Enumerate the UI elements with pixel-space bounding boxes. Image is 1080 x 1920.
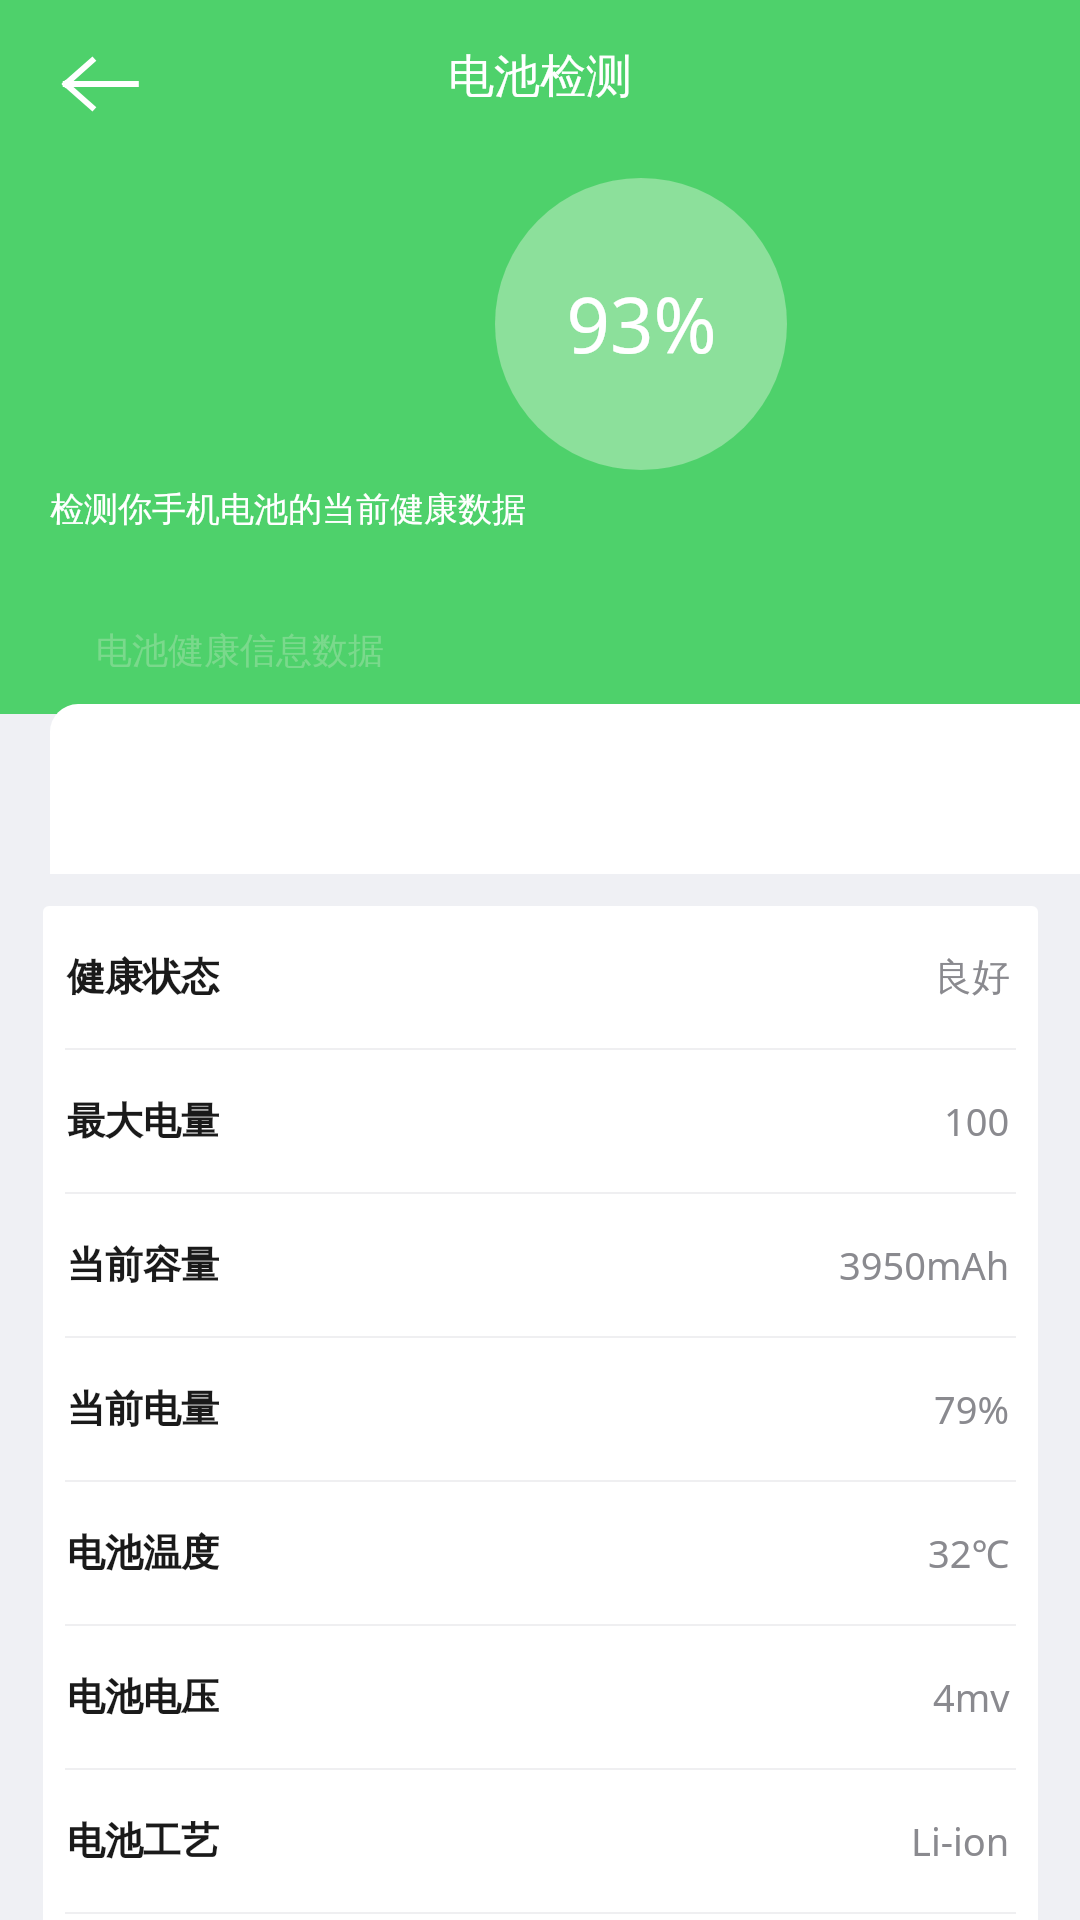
- button[interactable]: 当前容量: [43, 1194, 1038, 1336]
- staticText: 93%: [566, 272, 717, 376]
- staticText: 电池电压: [67, 1673, 219, 1721]
- staticText: 健康状态: [67, 953, 219, 1001]
- staticText: 电池工艺: [67, 1817, 219, 1865]
- staticText: 最大电量: [67, 1097, 219, 1145]
- staticText: 79%: [934, 1383, 1010, 1435]
- staticText: 电池健康信息数据: [96, 628, 384, 673]
- staticText: 4mv: [933, 1671, 1010, 1723]
- staticText: 100: [944, 1095, 1010, 1147]
- button[interactable]: 电池温度: [43, 1482, 1038, 1624]
- staticText: 良好: [934, 953, 1010, 1001]
- button[interactable]: 最大电量: [43, 1050, 1038, 1192]
- staticText: 电池检测: [0, 48, 1080, 106]
- button[interactable]: Back: [44, 28, 156, 140]
- button[interactable]: 电池电压: [43, 1626, 1038, 1768]
- staticText: 3950mAh: [839, 1239, 1010, 1291]
- staticText: 32℃: [928, 1527, 1010, 1579]
- staticText: Li-ion: [911, 1815, 1010, 1867]
- button[interactable]: 电池工艺: [43, 1770, 1038, 1912]
- staticText: 检测你手机电池的当前健康数据: [50, 488, 526, 531]
- staticText: 当前容量: [67, 1241, 219, 1289]
- staticText: 当前电量: [67, 1385, 219, 1433]
- staticText: 电池温度: [67, 1529, 219, 1577]
- button[interactable]: 当前电量: [43, 1338, 1038, 1480]
- button[interactable]: 健康状态: [43, 906, 1038, 1048]
